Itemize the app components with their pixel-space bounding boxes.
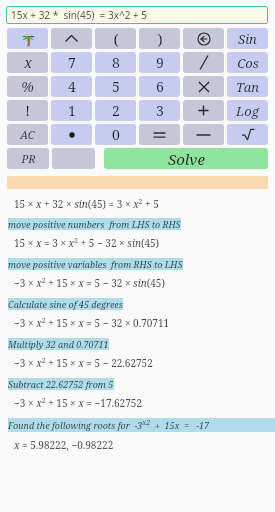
staticText: Tan [236, 78, 259, 96]
button[interactable]: 5 [95, 76, 136, 97]
button[interactable]: ( [95, 28, 136, 49]
button[interactable]: Minus [183, 124, 224, 145]
staticText: −3 × x2 + 15 × x = −17.62752 [14, 396, 142, 410]
staticText: Calculate sine of 45 degrees [8, 298, 123, 310]
button[interactable]: 4 [51, 76, 92, 97]
button[interactable]: Solve [104, 148, 268, 169]
button[interactable]: Plus [183, 100, 224, 121]
button[interactable]: 6 [139, 76, 180, 97]
button[interactable]: Tan [227, 76, 268, 97]
staticText: Cos [237, 54, 259, 72]
button[interactable]: x [7, 52, 48, 73]
staticText: ! [25, 101, 30, 120]
staticText: 0 [112, 125, 120, 144]
staticText: move positive numbers from LHS to RHS [8, 218, 181, 230]
button[interactable]: Equals [139, 124, 180, 145]
staticText: AC [20, 127, 35, 142]
staticText: 7 [68, 53, 76, 72]
button[interactable]: % [7, 76, 48, 97]
staticText: 1 [68, 101, 76, 120]
button[interactable]: 3 [139, 100, 180, 121]
button[interactable]: 1 [51, 100, 92, 121]
button[interactable]: Sin [227, 28, 268, 49]
button[interactable]: Divide [183, 52, 224, 73]
button[interactable]: 7 [51, 52, 92, 73]
staticText: Sin [238, 30, 257, 48]
staticText: Subtract 22.62752 from 5 [8, 378, 114, 390]
staticText: 5 [112, 77, 120, 96]
staticText: x = 5.98222, −0.98222 [14, 438, 114, 452]
button[interactable] [52, 148, 95, 169]
button[interactable]: Backspace [183, 28, 224, 49]
button[interactable]: Palm [7, 28, 48, 49]
staticText: −3 × x2 + 15 × x = 5 − 22.62752 [14, 356, 153, 370]
button[interactable]: Square root [227, 124, 268, 145]
staticText: Log [236, 102, 259, 120]
staticText: 4 [68, 77, 76, 96]
staticText: 15 × x = 3 × x2 + 5 − 32 × sin(45) [14, 236, 160, 250]
staticText: move positive variables from RHS to LHS [8, 258, 183, 270]
button[interactable]: PR [7, 148, 49, 169]
button[interactable]: 2 [95, 100, 136, 121]
staticText: −3 × x2 + 15 × x = 5 − 32 × 0.70711 [14, 316, 170, 330]
button[interactable]: AC [7, 124, 48, 145]
staticText: ) [157, 29, 163, 49]
button[interactable]: 9 [139, 52, 180, 73]
button[interactable]: 8 [95, 52, 136, 73]
staticText: 9 [156, 53, 164, 72]
staticText: 8 [112, 53, 120, 72]
button[interactable]: 15x + 32 * sin(45) = 3x^2 + 5 [6, 6, 268, 24]
staticText: Multiply 32 and 0.70711 [8, 338, 109, 350]
staticText: 15x + 32 * sin(45) = 3x^2 + 5 [11, 8, 147, 22]
button[interactable]: Log [227, 100, 268, 121]
staticText: 3 [156, 101, 164, 120]
button[interactable]: ! [7, 100, 48, 121]
staticText: % [21, 77, 34, 96]
button[interactable]: 0 [95, 124, 136, 145]
staticText: 15 × x + 32 × sin(45) = 3 × x2 + 5 [14, 197, 159, 211]
staticText: Found the following roots for −3x2 + 15x… [8, 418, 210, 432]
button[interactable]: Cos [227, 52, 268, 73]
staticText: −3 × x2 + 15 × x = 5 − 32 × sin(45) [14, 276, 165, 290]
staticText: PR [21, 151, 36, 166]
button[interactable]: Decimal point [51, 124, 92, 145]
button[interactable]: ) [139, 28, 180, 49]
staticText: Solve [168, 149, 205, 169]
button[interactable]: Multiply [183, 76, 224, 97]
staticText: x [24, 53, 32, 72]
staticText: 6 [156, 77, 164, 96]
staticText: ( [113, 29, 119, 49]
staticText: 2 [112, 101, 120, 120]
button[interactable]: Power [51, 28, 92, 49]
